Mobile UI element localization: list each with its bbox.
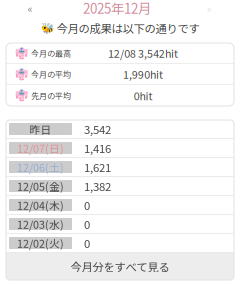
staticText: 1,990hit bbox=[123, 66, 163, 82]
staticText: 12/08 3,542hit bbox=[108, 45, 178, 61]
button[interactable]: Next month bbox=[200, 1, 218, 15]
staticText: « bbox=[27, 0, 32, 16]
staticText: 0 bbox=[84, 197, 90, 213]
staticText: 12/03(水) bbox=[17, 216, 64, 232]
button[interactable]: 12/04(木) bbox=[6, 196, 234, 214]
staticText: 0 bbox=[84, 235, 90, 251]
staticText: 12/04(木) bbox=[17, 197, 64, 213]
staticText: 👘 bbox=[14, 89, 27, 102]
button[interactable]: 12/07(日) bbox=[6, 139, 234, 157]
staticText: 👘 bbox=[14, 47, 27, 59]
button[interactable]: 今月分をすべて見る bbox=[6, 253, 234, 280]
staticText: 2025年12月 bbox=[83, 0, 151, 18]
staticText: 0hit bbox=[133, 88, 152, 103]
button[interactable]: 12/06(土) bbox=[6, 158, 234, 176]
staticText: 昨日 bbox=[29, 121, 51, 137]
staticText: 今月分をすべて見る bbox=[70, 258, 169, 275]
staticText: 1,382 bbox=[84, 178, 111, 194]
staticText: 👘 bbox=[14, 68, 27, 80]
staticText: 12/06(土) bbox=[17, 159, 64, 175]
button[interactable]: 12/02(火) bbox=[6, 234, 234, 252]
staticText: 1,416 bbox=[84, 140, 111, 156]
staticText: 0 bbox=[84, 216, 90, 232]
staticText: 12/05(金) bbox=[17, 178, 64, 194]
staticText: » bbox=[206, 0, 211, 16]
button[interactable]: Previous month bbox=[21, 1, 39, 15]
button[interactable]: 12/03(水) bbox=[6, 215, 234, 233]
staticText: 今月の平均 bbox=[31, 68, 71, 80]
staticText: 12/02(火) bbox=[17, 235, 64, 251]
staticText: 今月の最高 bbox=[31, 47, 71, 59]
staticText: 今月の成果は以下の通りです bbox=[56, 20, 199, 36]
staticText: 1,621 bbox=[84, 159, 111, 175]
button[interactable]: 昨日 bbox=[6, 120, 234, 138]
staticText: 先月の平均 bbox=[31, 90, 71, 101]
button[interactable]: 12/05(金) bbox=[6, 177, 234, 195]
staticText: 🐝 bbox=[40, 22, 53, 34]
staticText: 12/07(日) bbox=[17, 140, 64, 156]
staticText: 3,542 bbox=[84, 121, 111, 137]
